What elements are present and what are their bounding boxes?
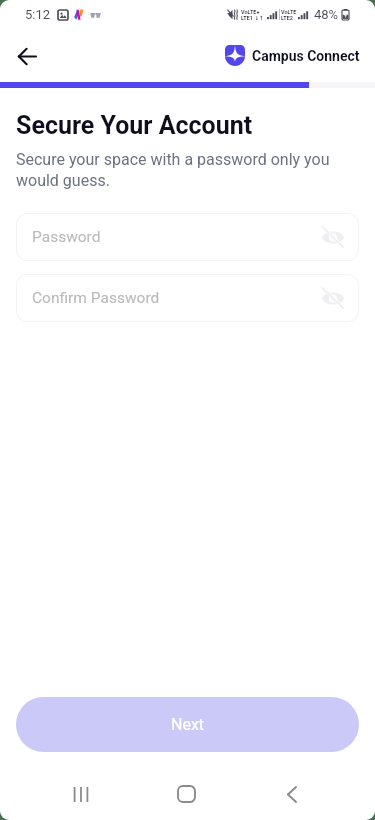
staticText: VoLTE+ [241, 9, 260, 15]
button[interactable]: Password [16, 213, 359, 261]
staticText: Secure Your Account [16, 111, 253, 140]
staticText: 48% [314, 7, 339, 22]
staticText: Next [171, 715, 205, 734]
button[interactable]: Recents [57, 770, 105, 818]
button[interactable]: Next [16, 697, 359, 752]
button[interactable]: Toggle password visibility [313, 213, 353, 261]
staticText: Confirm Password [32, 289, 160, 307]
staticText: Campus Connect [252, 48, 360, 64]
button[interactable]: Back [268, 770, 316, 818]
staticText: LTE1 ↓↑ [241, 15, 264, 21]
button[interactable]: Home [162, 770, 210, 818]
button[interactable]: Toggle password visibility [313, 274, 353, 322]
staticText: 5:12 [25, 7, 51, 22]
staticText: VoLTE [281, 9, 297, 15]
staticText: Secure your space with a password only y… [16, 150, 346, 190]
button[interactable]: Back [7, 36, 47, 76]
button[interactable]: Confirm Password [16, 274, 359, 322]
staticText: LTE2 [281, 15, 294, 21]
staticText: Password [32, 228, 101, 246]
